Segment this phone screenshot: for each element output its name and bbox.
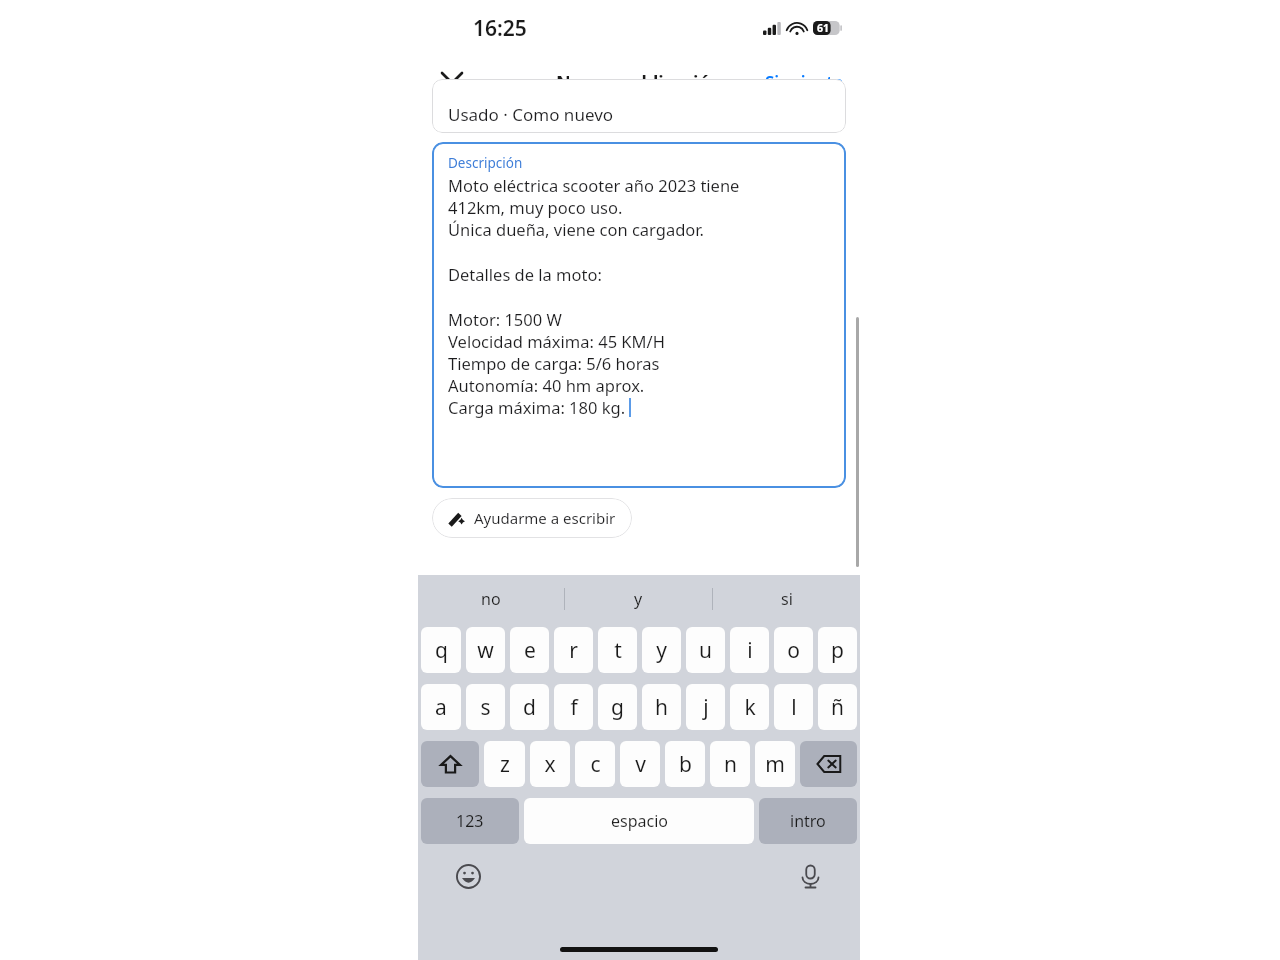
- staticText: o: [787, 636, 800, 665]
- staticText: 412km, muy poco uso.: [448, 196, 623, 218]
- staticText: no: [481, 588, 501, 610]
- button[interactable]: u: [686, 627, 725, 673]
- button[interactable]: intro: [759, 798, 857, 844]
- staticText: espacio: [611, 810, 668, 832]
- staticText: l: [791, 693, 797, 722]
- button[interactable]: q: [421, 627, 461, 673]
- button[interactable]: d: [510, 684, 549, 730]
- button[interactable]: p: [818, 627, 857, 673]
- staticText: 123: [456, 810, 484, 832]
- button[interactable]: t: [598, 627, 637, 673]
- button[interactable]: i: [730, 627, 769, 673]
- button[interactable]: Emoji: [448, 856, 488, 896]
- staticText: k: [744, 693, 756, 722]
- button[interactable]: k: [730, 684, 769, 730]
- staticText: y: [656, 636, 667, 665]
- button[interactable]: h: [642, 684, 681, 730]
- button[interactable]: ñ: [818, 684, 857, 730]
- button[interactable]: f: [554, 684, 593, 730]
- button[interactable]: j: [686, 684, 725, 730]
- staticText: i: [747, 636, 753, 665]
- staticText: Única dueña, viene con cargador.: [448, 218, 704, 240]
- button[interactable]: Borrar: [800, 741, 857, 787]
- staticText: Usado · Como nuevo: [448, 103, 614, 126]
- staticText: Carga máxima: 180 kg.: [448, 396, 626, 418]
- staticText: Tiempo de carga: 5/6 horas: [448, 352, 660, 374]
- button[interactable]: Usado · Como nuevo: [432, 79, 846, 133]
- button[interactable]: si: [713, 575, 860, 622]
- staticText: Descripción: [448, 154, 523, 172]
- button[interactable]: z: [484, 741, 525, 787]
- staticText: ñ: [831, 693, 844, 722]
- button[interactable]: Siguiente: [749, 63, 860, 102]
- staticText: y: [634, 588, 643, 610]
- button[interactable]: y: [642, 627, 681, 673]
- staticText: d: [523, 693, 536, 722]
- button[interactable]: 123: [421, 798, 519, 844]
- staticText: x: [544, 750, 556, 779]
- button[interactable]: y: [565, 575, 712, 622]
- staticText: g: [611, 693, 624, 722]
- staticText: Motor: 1500 W: [448, 308, 562, 330]
- button[interactable]: no: [418, 575, 564, 622]
- button[interactable]: Ayudarme a escribir: [432, 498, 632, 538]
- button[interactable]: a: [421, 684, 461, 730]
- staticText: e: [524, 636, 536, 665]
- button[interactable]: e: [510, 627, 549, 673]
- button[interactable]: v: [620, 741, 660, 787]
- button[interactable]: Descripción: [432, 142, 846, 488]
- staticText: s: [480, 693, 491, 722]
- staticText: Nueva publicación: [556, 70, 722, 95]
- staticText: intro: [790, 810, 826, 832]
- button[interactable]: x: [530, 741, 570, 787]
- staticText: r: [569, 636, 578, 665]
- staticText: si: [781, 588, 793, 610]
- staticText: z: [500, 750, 510, 779]
- staticText: Velocidad máxima: 45 KM/H: [448, 330, 665, 352]
- staticText: Siguiente: [765, 71, 844, 94]
- button[interactable]: m: [755, 741, 795, 787]
- staticText: Ayudarme a escribir: [474, 508, 616, 528]
- button[interactable]: w: [466, 627, 505, 673]
- staticText: m: [765, 750, 785, 779]
- staticText: h: [655, 693, 668, 722]
- button[interactable]: o: [774, 627, 813, 673]
- staticText: n: [724, 750, 737, 779]
- staticText: 61: [817, 21, 830, 35]
- staticText: Detalles de la moto:: [448, 263, 602, 285]
- button[interactable]: espacio: [524, 798, 754, 844]
- button[interactable]: Mayúsculas: [421, 741, 479, 787]
- staticText: t: [614, 636, 622, 665]
- staticText: q: [435, 636, 448, 665]
- button[interactable]: Cerrar: [430, 61, 474, 105]
- staticText: 16:25: [473, 14, 527, 43]
- button[interactable]: r: [554, 627, 593, 673]
- button[interactable]: l: [774, 684, 813, 730]
- staticText: u: [699, 636, 712, 665]
- button[interactable]: c: [575, 741, 615, 787]
- staticText: v: [635, 750, 646, 779]
- staticText: Moto eléctrica scooter año 2023 tiene: [448, 174, 740, 196]
- staticText: b: [679, 750, 692, 779]
- staticText: f: [570, 693, 578, 722]
- button[interactable]: n: [710, 741, 750, 787]
- staticText: w: [477, 636, 494, 665]
- staticText: Autonomía: 40 hm aprox.: [448, 374, 645, 396]
- staticText: a: [435, 693, 447, 722]
- button[interactable]: s: [466, 684, 505, 730]
- staticText: c: [590, 750, 601, 779]
- button[interactable]: g: [598, 684, 637, 730]
- button[interactable]: Dictado: [790, 856, 830, 896]
- button[interactable]: b: [665, 741, 705, 787]
- staticText: j: [703, 693, 709, 722]
- staticText: p: [831, 636, 844, 665]
